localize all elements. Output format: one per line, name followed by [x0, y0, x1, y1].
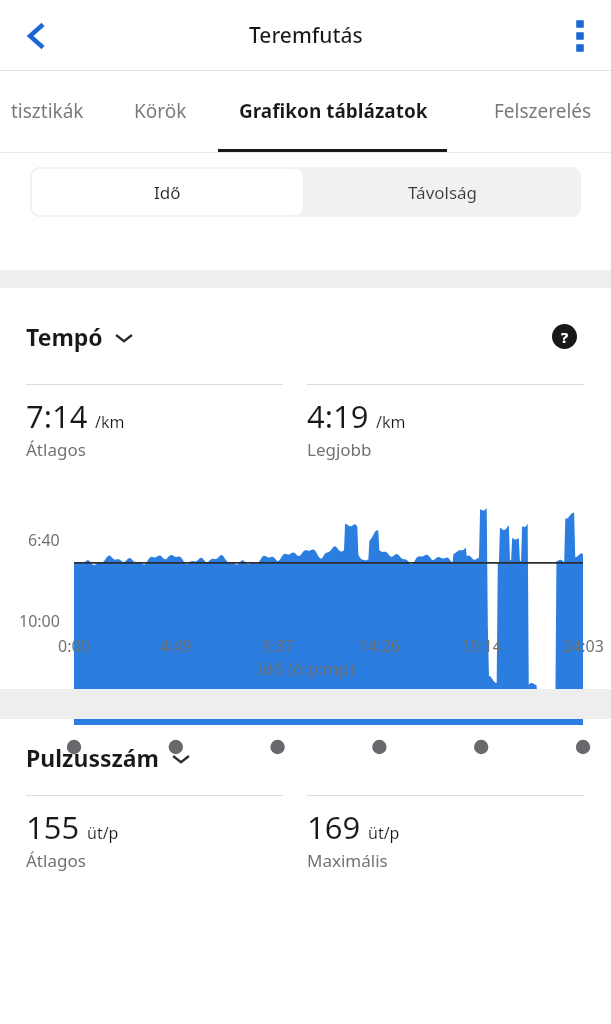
button[interactable]: Back: [6, 7, 64, 65]
staticText: 24:03: [563, 635, 604, 657]
staticText: 7:14: [26, 395, 88, 437]
button[interactable]: 7:14: [26, 384, 283, 461]
button[interactable]: More options: [553, 7, 601, 65]
staticText: 0:00: [58, 635, 90, 657]
staticText: 14:26: [359, 635, 400, 657]
staticText: /km: [376, 411, 406, 433]
button[interactable]: Távolság: [305, 167, 581, 217]
staticText: 9:37: [262, 635, 294, 657]
staticText: Tempó: [26, 321, 103, 352]
staticText: Legjobb: [307, 438, 372, 461]
staticText: Átlagos: [26, 438, 86, 461]
button[interactable]: tisztikák: [0, 71, 108, 150]
staticText: Pulzusszám: [26, 742, 160, 773]
staticText: üt/p: [87, 822, 119, 844]
button[interactable]: 155: [26, 795, 283, 872]
button[interactable]: Pulzusszám: [26, 742, 192, 773]
button[interactable]: Help: [543, 315, 585, 357]
button[interactable]: Felszerelés: [468, 71, 611, 150]
staticText: Felszerelés: [494, 98, 592, 124]
staticText: üt/p: [368, 822, 400, 844]
button[interactable]: Körök: [116, 71, 204, 150]
staticText: Átlagos: [26, 849, 86, 872]
button[interactable]: 4:19: [307, 384, 584, 461]
staticText: 169: [307, 806, 361, 848]
button[interactable]: 169: [307, 795, 584, 872]
staticText: ?: [561, 327, 569, 347]
staticText: 19:14: [461, 635, 502, 657]
staticText: 4:49: [160, 635, 192, 657]
staticText: Idő: [154, 181, 181, 204]
staticText: Grafikon táblázatok: [239, 98, 428, 124]
staticText: 155: [26, 806, 80, 848]
button[interactable]: Idő: [32, 169, 303, 215]
staticText: Teremfutás: [249, 21, 363, 50]
staticText: Maximális: [307, 849, 388, 872]
staticText: Távolság: [408, 181, 478, 204]
staticText: 4:19: [307, 395, 369, 437]
staticText: Körök: [134, 98, 187, 124]
staticText: Idő (ó:p:mp): [257, 657, 355, 680]
staticText: 6:40: [28, 529, 60, 551]
staticText: tisztikák: [11, 98, 84, 124]
button[interactable]: Tempó: [26, 321, 135, 352]
staticText: /km: [95, 411, 125, 433]
staticText: 10:00: [19, 610, 60, 632]
button[interactable]: Grafikon táblázatok: [206, 71, 460, 150]
